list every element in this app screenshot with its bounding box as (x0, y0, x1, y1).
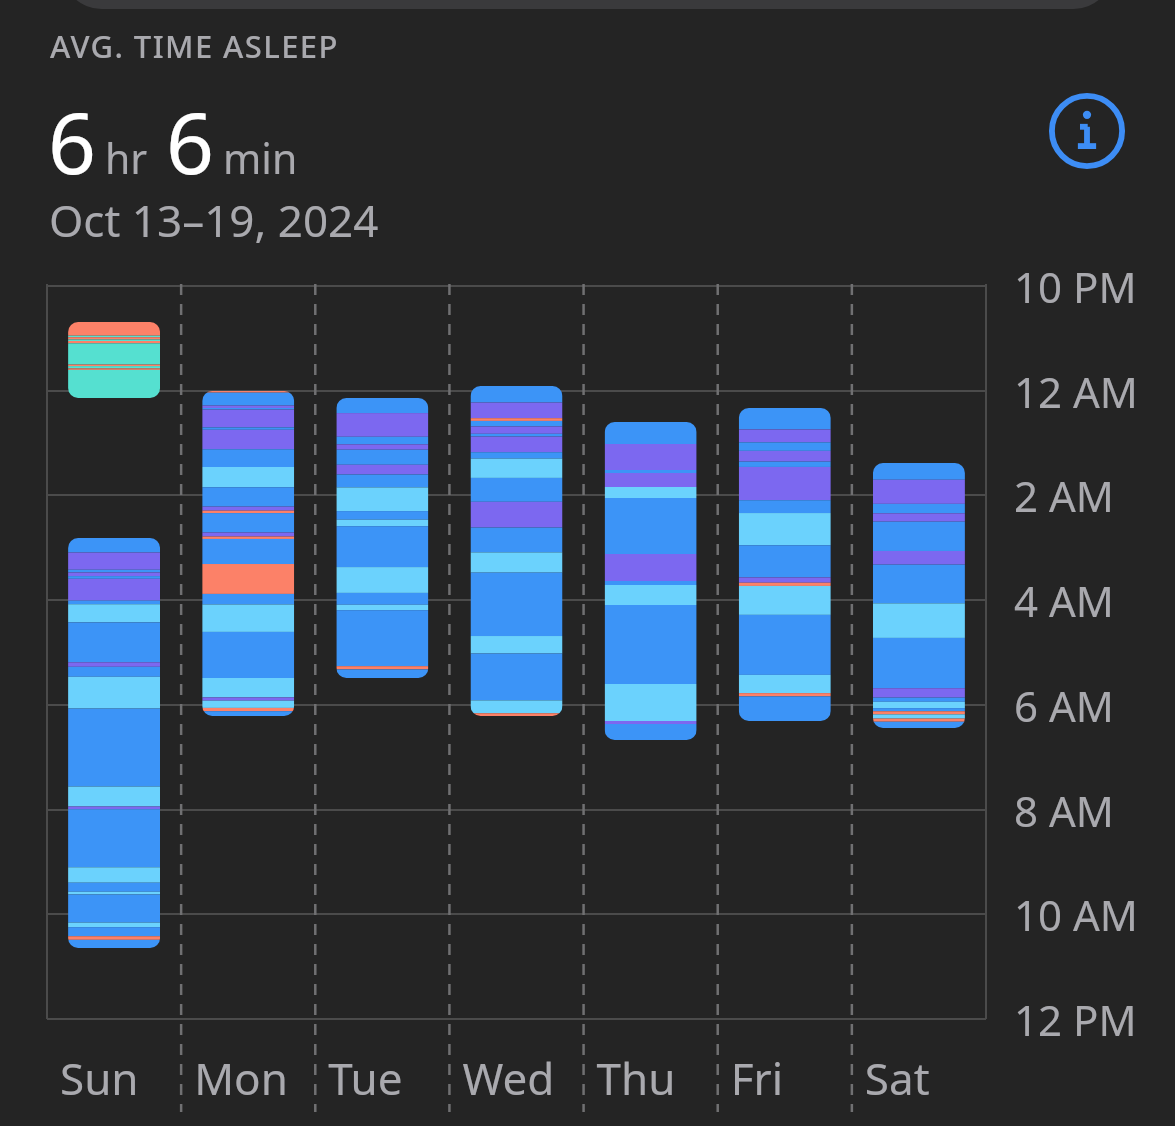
button[interactable]: About average time asleep (1048, 92, 1126, 170)
